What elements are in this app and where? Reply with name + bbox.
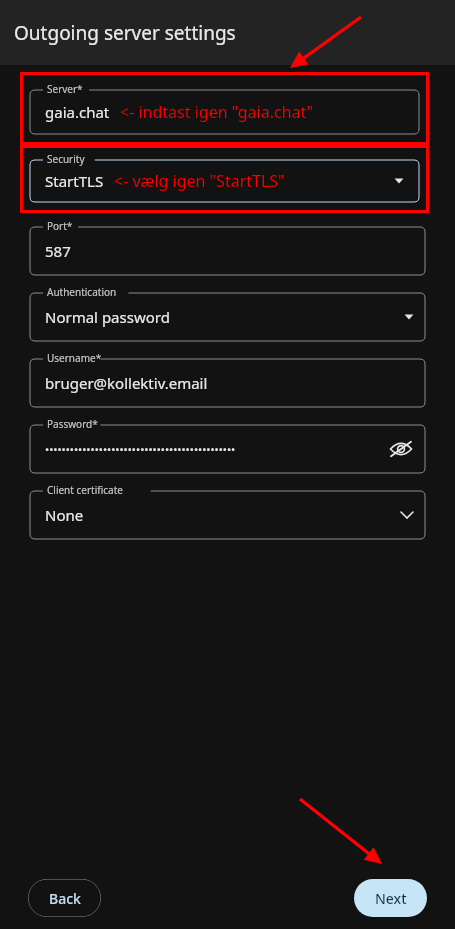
staticText: Normal password [45,307,170,327]
button[interactable]: Server* [30,82,419,134]
staticText: <- vælg igen "StartTLS" [114,170,285,192]
button[interactable]: Show password [378,432,418,472]
button[interactable]: Security [30,152,419,202]
staticText: Port* [47,219,73,233]
staticText: Authentication [47,285,117,299]
staticText: 587 [45,241,71,261]
button[interactable]: Port* [30,219,425,275]
staticText: <- indtast igen "gaia.chat" [120,101,314,123]
staticText: bruger@kollektiv.email [45,373,208,393]
staticText: Password* [47,417,98,431]
staticText: Back [49,889,81,908]
staticText: Client certificate [47,483,123,497]
button[interactable]: Next [354,879,427,917]
button[interactable]: Client certificate [30,483,425,539]
staticText: gaia.chat [45,102,110,122]
staticText: ••••••••••••••••••••••••••••••••••••••••… [45,442,236,457]
button[interactable]: Back [28,879,101,917]
staticText: Server* [47,82,83,96]
staticText: Security [47,152,85,166]
staticText: Outgoing server settings [14,20,236,46]
staticText: None [45,505,84,525]
staticText: StartTLS [45,171,104,191]
staticText: Username* [47,351,102,365]
button[interactable]: Username* [30,351,425,407]
staticText: Next [375,889,407,908]
button[interactable]: Authentication [30,285,425,341]
button[interactable]: Password* [30,417,425,473]
